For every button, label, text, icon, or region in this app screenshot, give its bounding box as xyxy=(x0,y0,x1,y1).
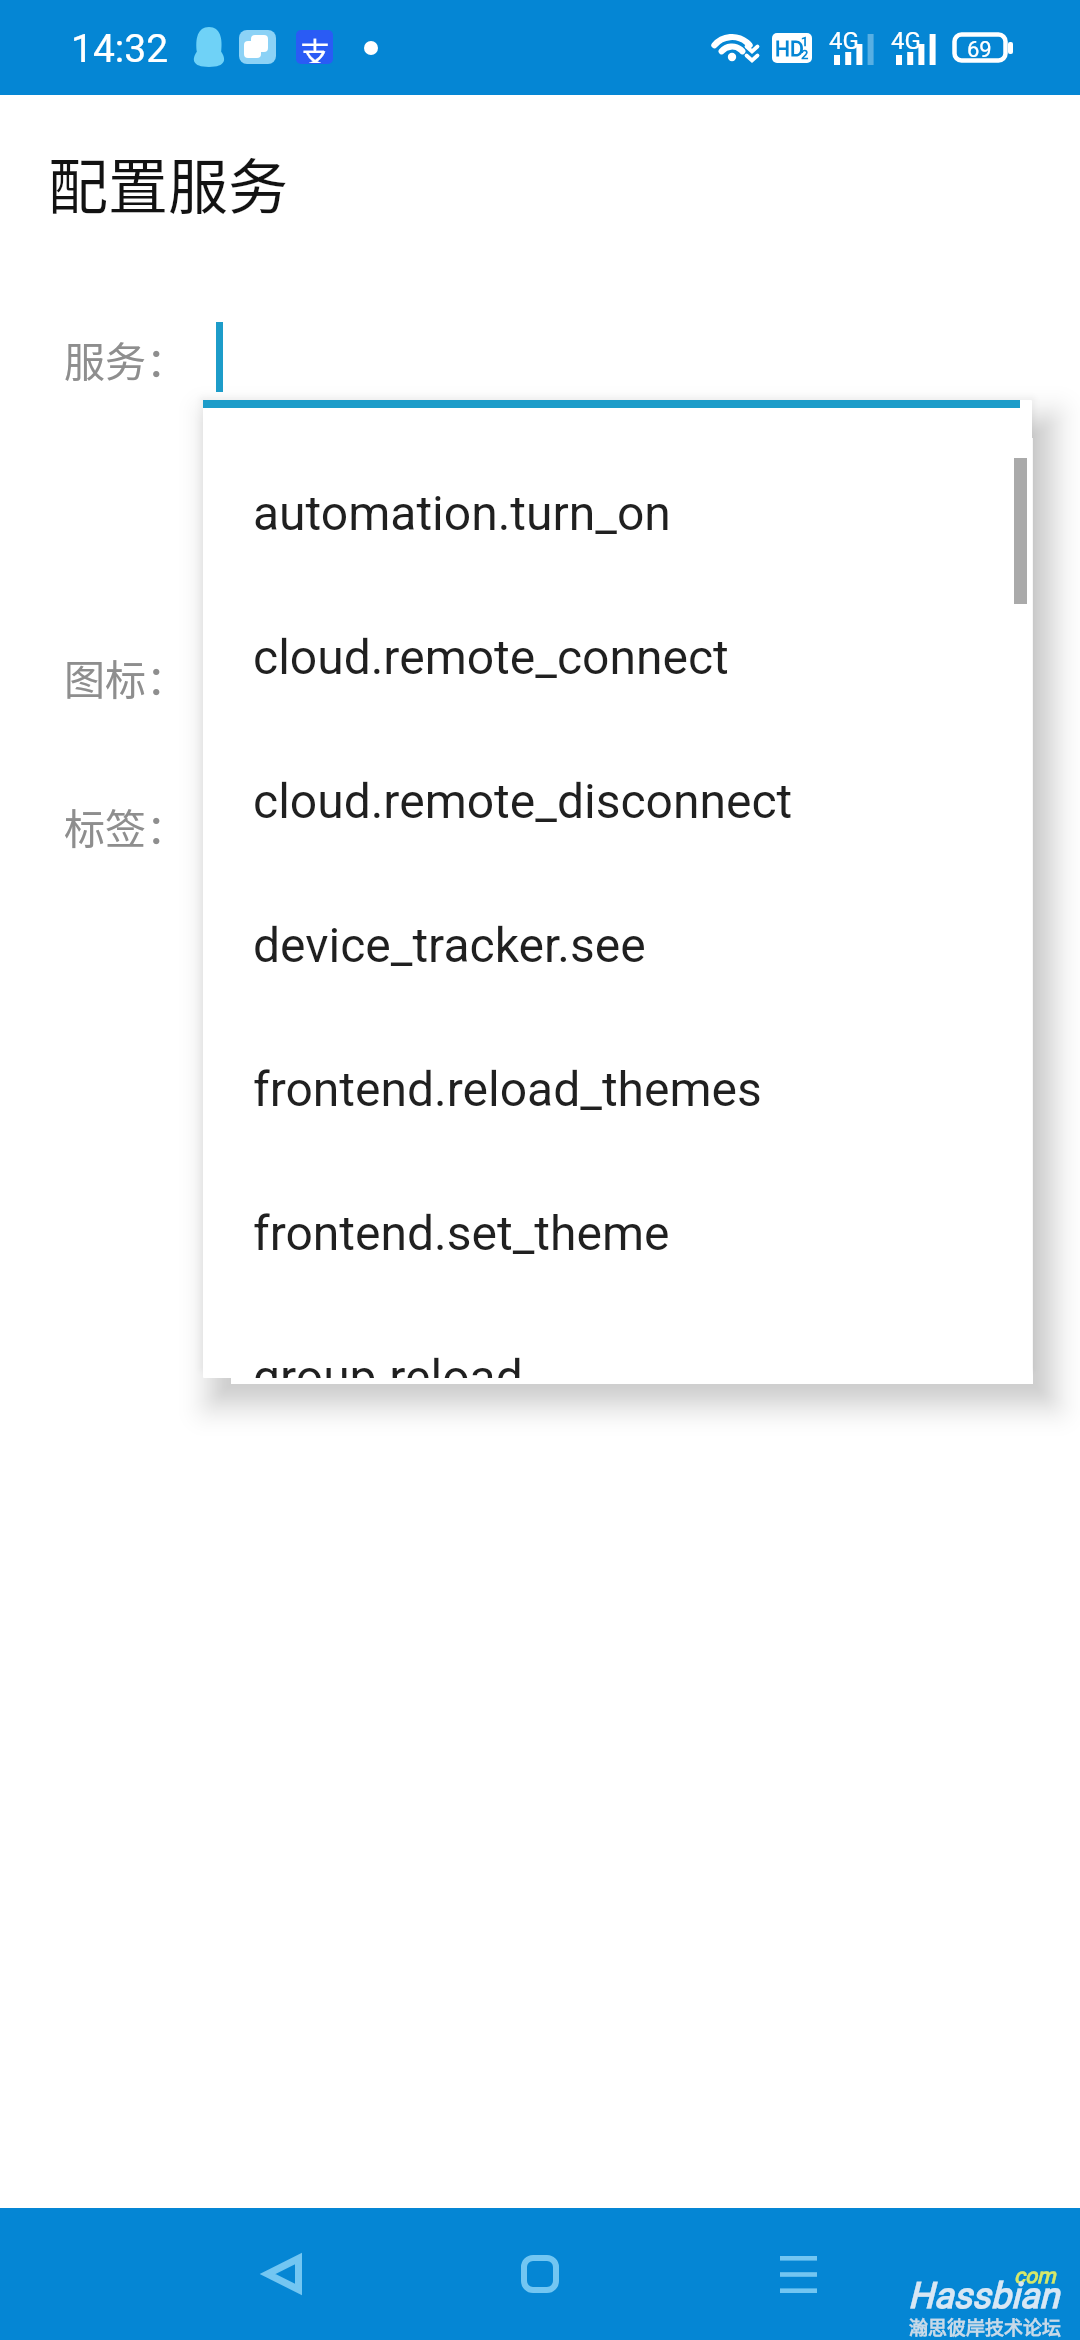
staticText: Hassbian xyxy=(908,2275,1059,2317)
button[interactable]: device_tracker.see xyxy=(203,859,1032,1003)
staticText: group.reload xyxy=(253,1349,523,1378)
staticText: frontend.reload_themes xyxy=(253,1061,762,1117)
staticText: 4G xyxy=(891,27,921,55)
staticText: 配置服务 xyxy=(48,139,288,226)
staticText: 69 xyxy=(967,37,992,63)
button[interactable]: 标签： xyxy=(40,777,1032,877)
button[interactable]: cloud.remote_connect xyxy=(203,571,1032,715)
staticText: 4G xyxy=(829,27,859,55)
button[interactable]: Home xyxy=(440,2208,640,2340)
staticText: 支 xyxy=(300,30,330,63)
staticText: 1 xyxy=(801,34,809,49)
staticText: frontend.set_theme xyxy=(253,1205,670,1261)
button[interactable]: cloud.remote_disconnect xyxy=(203,715,1032,859)
button[interactable]: automation.turn_on xyxy=(203,427,1032,571)
staticText: 标签： xyxy=(64,796,187,855)
button[interactable]: 服务： xyxy=(40,310,1032,410)
button[interactable]: frontend.reload_themes xyxy=(203,1003,1032,1147)
staticText: device_tracker.see xyxy=(253,917,646,973)
button[interactable]: group.reload xyxy=(203,1291,1032,1378)
staticText: 瀚思彼岸技术论坛 xyxy=(909,2313,1062,2340)
button[interactable]: frontend.set_theme xyxy=(203,1147,1032,1291)
staticText: cloud.remote_connect xyxy=(253,629,729,685)
staticText: cloud.remote_disconnect xyxy=(253,773,793,829)
staticText: 2 xyxy=(801,47,809,62)
button[interactable]: Back xyxy=(182,2208,382,2340)
staticText: automation.turn_on xyxy=(253,485,671,541)
staticText: 图标： xyxy=(64,647,187,706)
staticText: HD xyxy=(775,37,804,62)
button[interactable]: Recent apps xyxy=(698,2208,898,2340)
staticText: 服务： xyxy=(64,329,187,388)
staticText: com xyxy=(1014,2264,1056,2289)
staticText: 14:32 xyxy=(71,26,169,72)
button[interactable]: 图标： xyxy=(40,628,1032,728)
